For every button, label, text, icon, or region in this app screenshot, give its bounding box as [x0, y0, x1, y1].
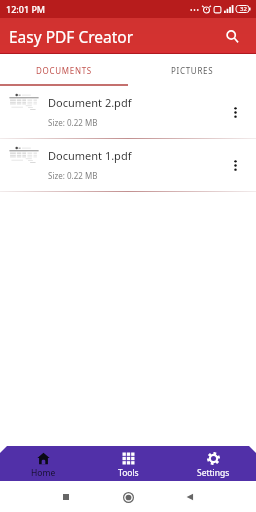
button[interactable]: Document 2.pdf: [0, 86, 256, 138]
staticText: Size: 0.22 MB: [48, 170, 98, 181]
button[interactable]: PICTURES: [128, 54, 256, 84]
button[interactable]: Settings: [171, 446, 256, 481]
staticText: Size: 0.22 MB: [48, 117, 98, 128]
button[interactable]: More options: [219, 96, 251, 128]
staticText: Tools: [118, 467, 139, 479]
button[interactable]: Back: [180, 487, 200, 507]
staticText: Document 2.pdf: [48, 95, 132, 110]
button[interactable]: More options: [219, 149, 251, 181]
staticText: 12:01 PM: [6, 3, 46, 15]
button[interactable]: Tools: [86, 446, 171, 481]
button[interactable]: Document 1.pdf: [0, 139, 256, 191]
staticText: 32: [240, 5, 247, 13]
staticText: DOCUMENTS: [36, 65, 92, 76]
button[interactable]: Recents: [56, 487, 76, 507]
staticText: Settings: [197, 467, 230, 479]
staticText: Document 1.pdf: [48, 148, 132, 163]
button[interactable]: Search: [219, 23, 245, 49]
button[interactable]: DOCUMENTS: [0, 54, 128, 84]
button[interactable]: Home: [118, 487, 138, 507]
button[interactable]: Home: [0, 446, 86, 481]
staticText: Easy PDF Creator: [9, 26, 134, 47]
staticText: Home: [31, 467, 56, 479]
staticText: PICTURES: [171, 65, 214, 76]
